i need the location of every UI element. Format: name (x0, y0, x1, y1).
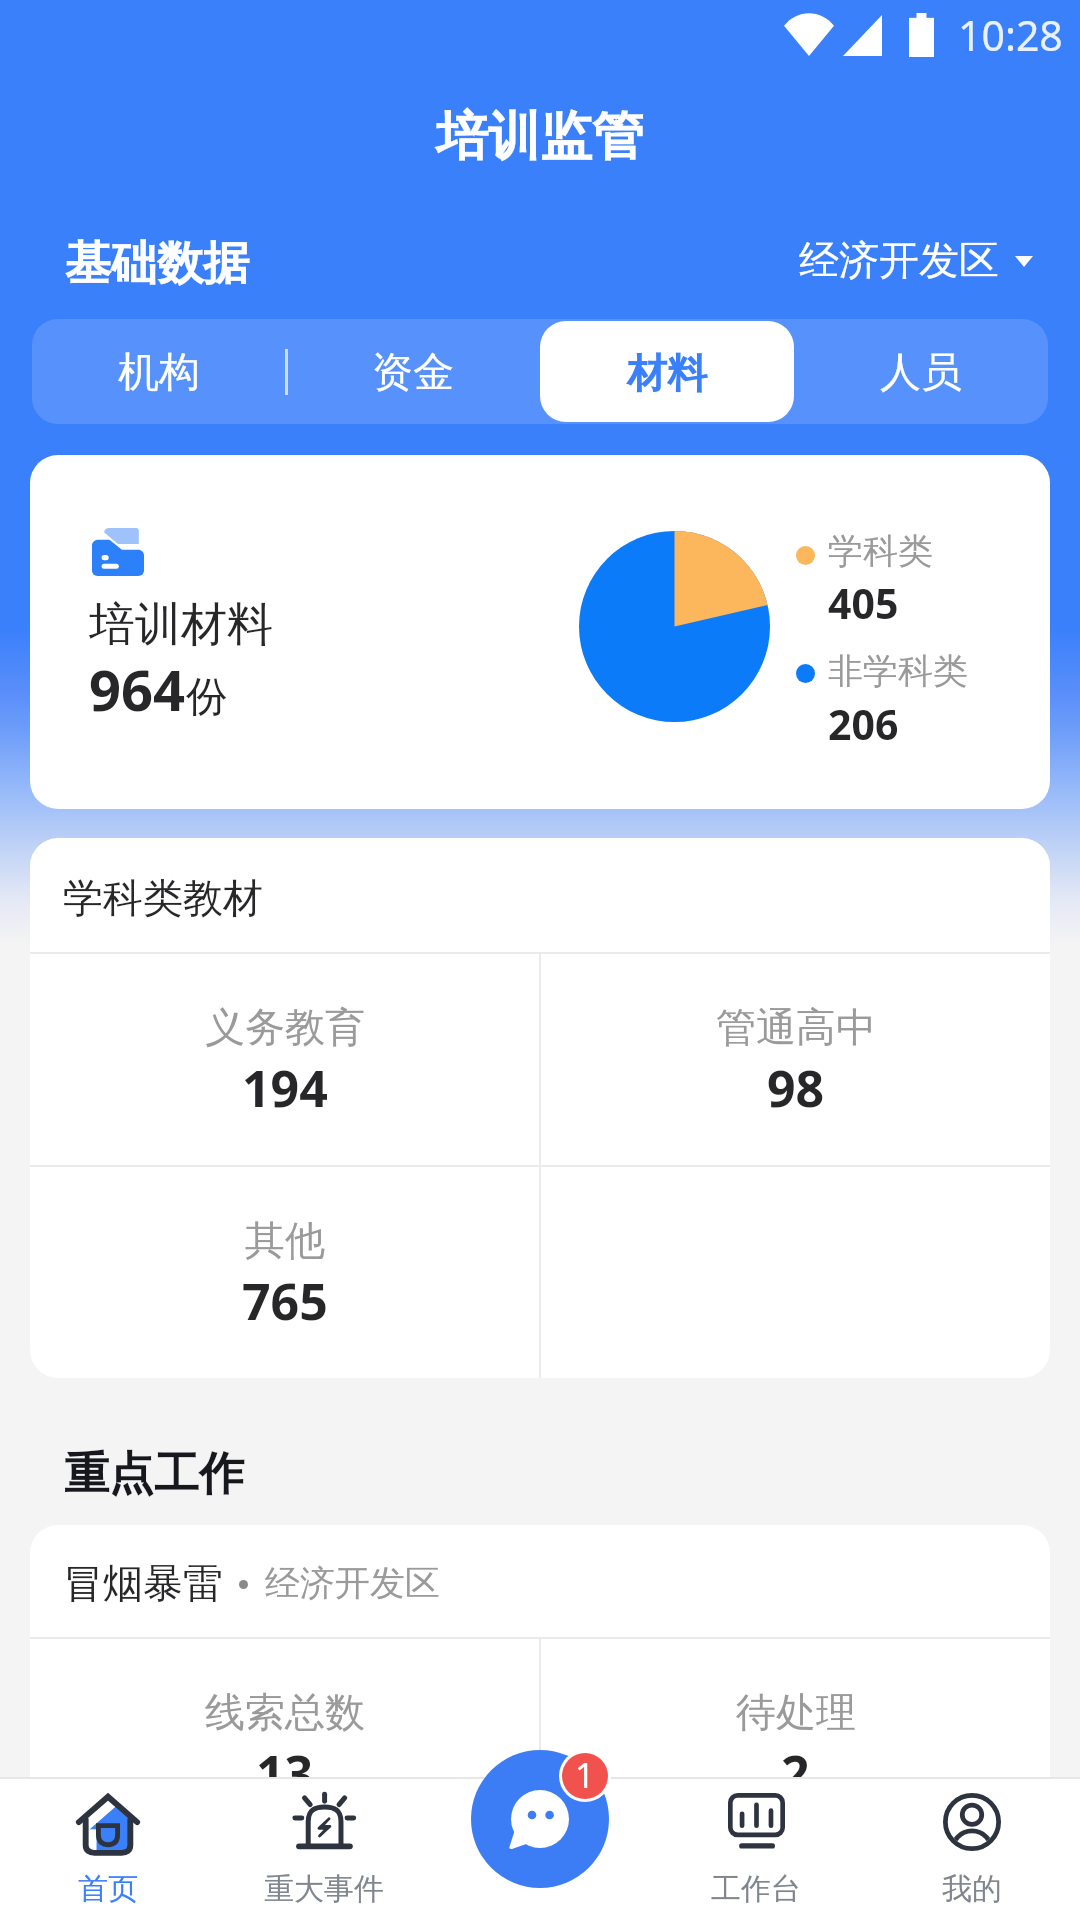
staticText: 765 (242, 1267, 328, 1335)
button[interactable]: 资金 (286, 319, 540, 424)
staticText: 206 (828, 696, 899, 752)
staticText: 经济开发区 (799, 235, 999, 285)
button[interactable]: 工作台 (648, 1777, 864, 1920)
staticText: 基础数据 (65, 235, 249, 293)
staticText: 工作台 (711, 1870, 801, 1908)
staticText: 机构 (118, 347, 200, 399)
button[interactable]: 义务教育 (30, 958, 539, 1165)
staticText: 964 (89, 651, 186, 727)
staticText: 培训监管 (436, 104, 644, 170)
staticText: 人员 (880, 347, 962, 399)
button[interactable]: 我的 (864, 1777, 1080, 1920)
staticText: 线索总数 (205, 1687, 365, 1737)
staticText: 冒烟暴雷 (63, 1558, 223, 1608)
button[interactable]: 其他 (30, 1171, 539, 1378)
staticText: 1 (575, 1753, 595, 1798)
staticText: 学科类 (828, 529, 933, 573)
staticText: 待处理 (736, 1687, 856, 1737)
button[interactable]: 培训材料 (30, 455, 1050, 809)
staticText: 重大事件 (264, 1870, 384, 1908)
staticText: 重点工作 (64, 1446, 244, 1503)
button[interactable]: 管通高中 (541, 958, 1050, 1165)
staticText: 份 (186, 671, 228, 724)
staticText: 非学科类 (828, 649, 968, 693)
button[interactable]: 消息 (471, 1750, 609, 1888)
button[interactable]: 经济开发区 (799, 235, 1033, 285)
staticText: 我的 (942, 1870, 1002, 1908)
staticText: 2 (781, 1739, 810, 1807)
button[interactable]: 待处理 (541, 1643, 1050, 1850)
staticText: 管通高中 (716, 1002, 876, 1052)
button[interactable]: 重大事件 (216, 1777, 432, 1920)
staticText: 首页 (78, 1870, 138, 1908)
staticText: 10:28 (958, 7, 1063, 63)
staticText: 13 (256, 1739, 314, 1807)
staticText: 义务教育 (205, 1002, 365, 1052)
button[interactable]: 学科类教材 (30, 838, 1050, 952)
staticText: 194 (242, 1054, 328, 1122)
staticText: 经济开发区 (265, 1561, 440, 1605)
staticText: 学科类教材 (63, 873, 263, 923)
button[interactable]: 材料 (540, 319, 794, 424)
button[interactable]: 线索总数 (30, 1643, 539, 1850)
button[interactable]: 人员 (794, 319, 1048, 424)
staticText: 培训材料 (89, 596, 273, 654)
staticText: 材料 (627, 348, 707, 398)
staticText: 其他 (245, 1215, 325, 1265)
staticText: 资金 (372, 347, 454, 399)
button[interactable]: 冒烟暴雷 (30, 1525, 1050, 1637)
staticText: 98 (767, 1054, 825, 1122)
button[interactable]: 首页 (0, 1777, 216, 1920)
button[interactable]: 机构 (32, 319, 286, 424)
staticText: 405 (828, 575, 899, 631)
